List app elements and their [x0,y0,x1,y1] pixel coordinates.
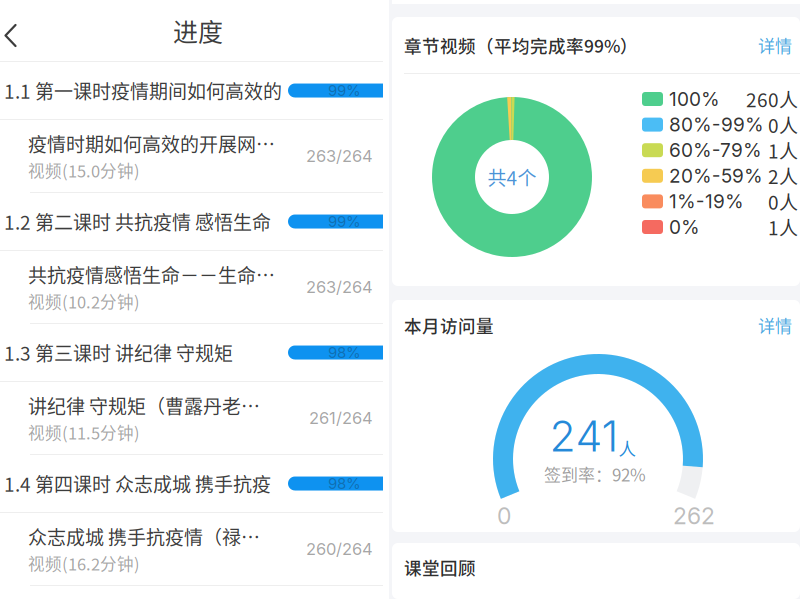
staticText: 0人 [768,188,798,215]
staticText: 0% [669,215,700,238]
staticText: 1.2 第二课时 共抗疫情 感悟生命 [4,208,271,235]
staticText: 1.1 第一课时疫情期间如何高效的 [4,77,282,104]
staticText: 详情 [758,313,792,337]
staticText: 99% [328,212,361,230]
staticText: 1.3 第三课时 讲纪律 守规矩 [4,339,233,366]
staticText: 签到率：92% [544,462,646,486]
staticText: › [383,537,391,561]
staticText: 241 [549,410,618,462]
staticText: › [383,275,391,299]
staticText: 260人 [746,85,798,113]
staticText: 共4个 [487,163,536,191]
staticText: 263/264 [306,277,373,297]
staticText: 99% [328,81,361,99]
staticText: › [383,406,391,430]
staticText: 98% [328,474,361,492]
staticText: 课堂回顾 [404,554,476,580]
staticText: 98% [328,343,361,361]
staticText: 进度 [173,12,223,49]
staticText: 100% [669,87,720,110]
button[interactable]: Back [0,5,34,66]
button[interactable]: 共抗疫情感悟生命－－生命… [0,251,420,323]
staticText: 视频(11.5分钟) [28,420,140,444]
staticText: 1.4 第四课时 众志成城 携手抗疫 [4,470,271,497]
button[interactable]: 详情 [758,33,792,57]
button[interactable]: 1.4 第四课时 众志成城 携手抗疫 [0,455,420,512]
staticText: 视频(10.2分钟) [28,289,140,313]
staticText: 人 [618,435,636,461]
staticText: 261/264 [309,408,373,428]
button[interactable]: 讲纪律 守规矩（曹露丹老… [0,382,420,454]
staticText: 260/264 [306,539,373,559]
staticText: 疫情时期如何高效的开展网… [28,130,275,157]
staticText: 众志成城 携手抗疫情（禄… [28,523,260,550]
button[interactable]: 众志成城 携手抗疫情（禄… [0,513,420,585]
button[interactable]: 1.3 第三课时 讲纪律 守规矩 [0,324,420,381]
staticText: 80%-99% [669,113,764,136]
button[interactable]: 疫情时期如何高效的开展网… [0,120,420,192]
staticText: 1%-19% [669,190,744,213]
staticText: 263/264 [306,146,373,166]
staticText: 262 [673,502,715,530]
staticText: 0 [497,502,511,530]
staticText: 1人 [768,136,798,164]
staticText: 20%-59% [669,164,763,187]
staticText: 60%-79% [669,139,762,162]
button[interactable]: 1.2 第二课时 共抗疫情 感悟生命 [0,193,420,250]
staticText: 视频(16.2分钟) [28,551,140,575]
staticText: 视频(15.0分钟) [28,158,140,182]
staticText: 本月访问量 [404,312,494,338]
staticText: 2人 [768,162,798,189]
button[interactable]: 1.1 第一课时疫情期间如何高效的 [0,62,420,119]
staticText: 章节视频（平均完成率99%） [404,32,638,58]
button[interactable]: 详情 [758,313,792,337]
staticText: 1人 [768,213,798,241]
staticText: 讲纪律 守规矩（曹露丹老… [28,392,260,419]
staticText: 0人 [768,111,798,138]
staticText: 共抗疫情感悟生命－－生命… [28,261,275,288]
staticText: › [383,144,391,168]
staticText: 详情 [758,33,792,57]
